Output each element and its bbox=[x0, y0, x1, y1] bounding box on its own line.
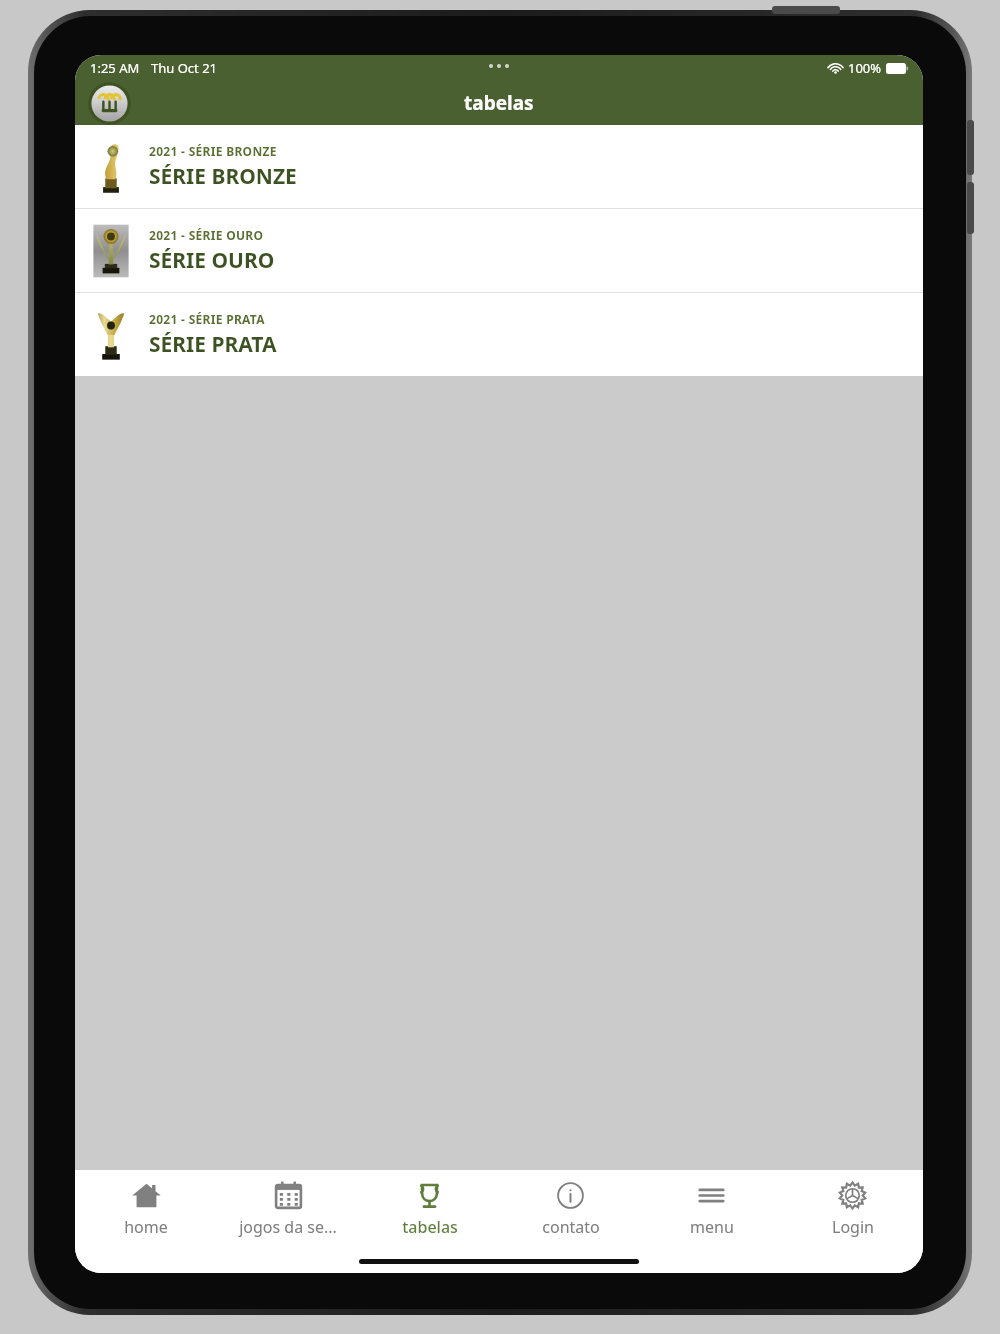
staticText: 2021 - SÉRIE OURO bbox=[149, 227, 264, 243]
staticText: 2021 - SÉRIE PRATA bbox=[149, 311, 265, 327]
button[interactable]: Login bbox=[782, 1170, 923, 1252]
staticText: contato bbox=[542, 1216, 600, 1238]
button[interactable]: App logo bbox=[88, 82, 131, 125]
staticText: 100% bbox=[848, 59, 882, 77]
staticText: 2021 - SÉRIE BRONZE bbox=[149, 143, 277, 159]
staticText: tabelas bbox=[402, 1216, 458, 1238]
button[interactable]: 2021 - SÉRIE OURO bbox=[75, 209, 923, 292]
staticText: jogos da se... bbox=[239, 1216, 337, 1238]
button[interactable]: tabelas bbox=[359, 1170, 500, 1252]
staticText: Login bbox=[832, 1216, 874, 1238]
staticText: home bbox=[124, 1216, 168, 1238]
staticText: SÉRIE OURO bbox=[149, 246, 275, 275]
staticText: SÉRIE BRONZE bbox=[149, 162, 297, 191]
staticText: menu bbox=[690, 1216, 734, 1238]
button[interactable]: contato bbox=[500, 1170, 641, 1252]
staticText: SÉRIE PRATA bbox=[149, 330, 277, 359]
button[interactable]: 2021 - SÉRIE BRONZE bbox=[75, 125, 923, 208]
button[interactable]: 2021 - SÉRIE PRATA bbox=[75, 293, 923, 376]
staticText: tabelas bbox=[464, 90, 534, 116]
button[interactable]: home bbox=[75, 1170, 217, 1252]
staticText: Thu Oct 21 bbox=[151, 59, 218, 77]
button[interactable]: jogos da se... bbox=[217, 1170, 359, 1252]
staticText: 1:25 AM bbox=[90, 59, 140, 77]
button[interactable]: menu bbox=[641, 1170, 782, 1252]
